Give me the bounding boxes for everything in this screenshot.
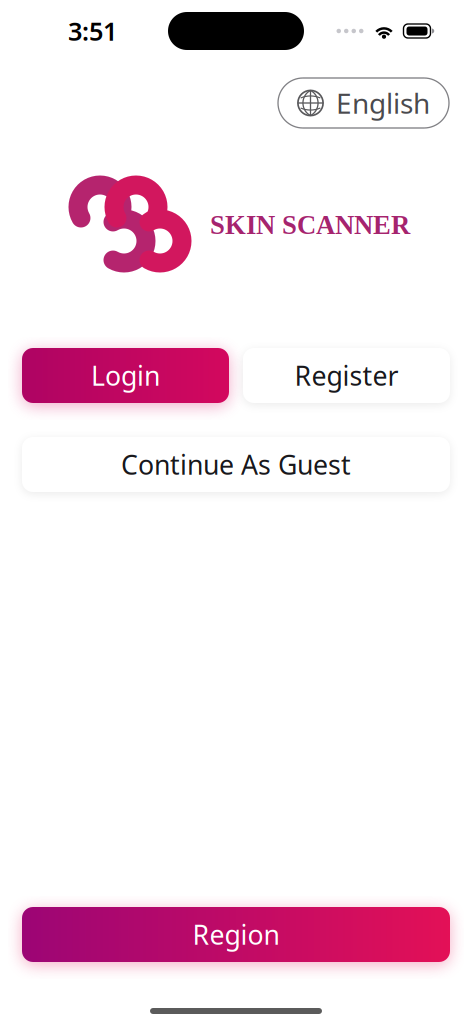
staticText: Register [294, 358, 398, 393]
button[interactable]: Login [22, 348, 229, 403]
staticText: English [336, 84, 430, 122]
button[interactable]: Region [22, 907, 450, 962]
button[interactable]: English [278, 78, 449, 128]
staticText: Continue As Guest [121, 447, 351, 482]
staticText: 3:51 [68, 14, 117, 48]
button[interactable]: Register [243, 348, 450, 403]
staticText: SKIN SCANNER [210, 210, 410, 240]
staticText: Login [91, 358, 160, 393]
staticText: Region [192, 917, 279, 952]
button[interactable]: Continue As Guest [22, 437, 450, 492]
